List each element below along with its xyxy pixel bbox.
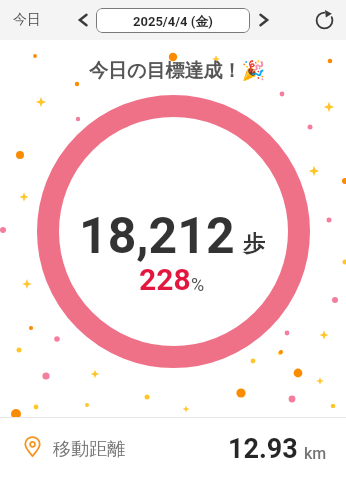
button[interactable]: Next day <box>251 7 277 33</box>
staticText: 228 <box>139 262 191 297</box>
button[interactable]: 移動距離 <box>0 418 346 480</box>
staticText: 移動距離 <box>53 438 125 461</box>
button[interactable]: Refresh <box>311 7 337 33</box>
button[interactable]: 今日 <box>7 4 47 36</box>
staticText: 2025/4/4 (金) <box>133 13 213 29</box>
staticText: 18,212 <box>79 207 235 266</box>
staticText: % <box>191 274 205 295</box>
staticText: 今日 <box>13 11 41 29</box>
button[interactable]: 2025/4/4 (金) <box>96 8 250 33</box>
staticText: 12.93 <box>228 433 298 465</box>
staticText: 歩 <box>243 230 265 258</box>
button[interactable]: Previous day <box>70 7 96 33</box>
staticText: 今日の目標達成！🎉 <box>89 59 266 83</box>
staticText: km <box>304 444 327 463</box>
